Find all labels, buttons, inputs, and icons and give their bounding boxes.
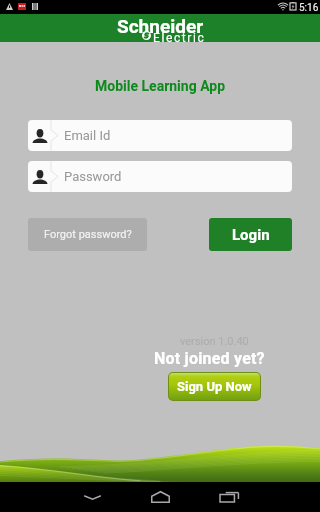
button[interactable]: Forgot password? (28, 218, 147, 251)
staticText: Forgot password? (44, 228, 132, 241)
staticText: Electric (153, 31, 206, 45)
staticText: Sign Up Now (177, 379, 252, 394)
button[interactable]: Sign Up Now (168, 372, 261, 401)
staticText: Email Id (64, 128, 111, 143)
button[interactable]: Recent apps (208, 482, 250, 512)
button[interactable]: Login (209, 218, 292, 251)
staticText: Login (232, 226, 270, 244)
staticText: Not joined yet? (154, 349, 265, 368)
staticText: Password (64, 169, 122, 184)
staticText: 5:16 (299, 2, 319, 14)
staticText: Schneider (117, 15, 204, 37)
button[interactable]: Email Id (28, 120, 292, 151)
button[interactable]: Back (71, 482, 113, 512)
staticText: Mobile Learning App (0, 78, 320, 94)
button[interactable]: Password (28, 161, 292, 192)
button[interactable]: Home (139, 482, 181, 512)
staticText: version 1.0.40 (180, 335, 249, 348)
